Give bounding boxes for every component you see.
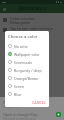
staticText: Appearance xyxy=(18,5,47,12)
button[interactable]: Product Name GPL License xyxy=(3,100,61,109)
staticText: CANCEL xyxy=(32,100,46,105)
staticText: Version 1.0 xyxy=(3,105,18,109)
button[interactable]: Blue xyxy=(8,90,47,98)
staticText: Orange/Brown xyxy=(14,76,39,81)
button[interactable]: Open in Google Play xyxy=(3,112,61,120)
button[interactable]: Orange/Brown xyxy=(8,74,47,82)
staticText: Wallpaper color xyxy=(14,52,40,57)
staticText: Burgundy / deep red tone xyxy=(14,68,47,73)
button[interactable]: No color extraction / static color xyxy=(8,42,47,50)
staticText: Rate and review the app xyxy=(3,117,36,120)
staticText: No color extraction / static color xyxy=(14,44,47,49)
staticText: Color scheme xyxy=(10,16,35,21)
button[interactable]: Tap to see color scheme xyxy=(0,25,64,35)
staticText: Product Name GPL License xyxy=(3,100,49,105)
button[interactable]: Green xyxy=(8,82,47,90)
button[interactable]: Add xyxy=(56,112,61,117)
staticText: Open in Google Play xyxy=(3,112,38,117)
button[interactable]: Color scheme xyxy=(0,15,64,25)
button[interactable]: Greenscale xyxy=(8,58,47,66)
staticText: Tap to see color scheme xyxy=(10,26,53,31)
staticText: Greenscale xyxy=(14,60,33,65)
staticText: Choose a color xyxy=(8,34,38,40)
staticText: Green xyxy=(14,84,25,89)
staticText: Follow system xyxy=(10,21,30,25)
button[interactable]: Burgundy / deep red tone xyxy=(8,66,47,74)
button[interactable]: Wallpaper color xyxy=(8,50,47,58)
staticText: Blue xyxy=(14,92,22,97)
button[interactable]: CANCEL xyxy=(31,99,47,106)
button[interactable]: Navigate up xyxy=(2,7,6,11)
